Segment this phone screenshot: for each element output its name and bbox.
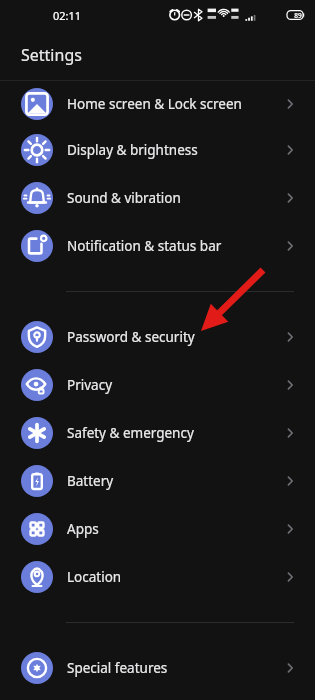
button[interactable]: Location	[0, 553, 315, 601]
staticText: Sound & vibration	[67, 189, 282, 207]
button[interactable]: Special features	[0, 644, 315, 692]
button[interactable]: Password & security	[0, 313, 315, 361]
staticText: 02:11	[53, 8, 82, 23]
staticText: Battery	[67, 472, 282, 490]
staticText: Settings	[21, 44, 82, 66]
staticText: Special features	[67, 659, 282, 677]
button[interactable]: Privacy	[0, 361, 315, 409]
staticText: Privacy	[67, 376, 282, 394]
staticText: Notification & status bar	[67, 237, 282, 255]
button[interactable]: Notification & status bar	[0, 222, 315, 270]
staticText: 89	[294, 11, 302, 20]
button[interactable]: Display & brightness	[0, 126, 315, 174]
staticText: Safety & emergency	[67, 424, 282, 442]
staticText: Apps	[67, 520, 282, 538]
staticText: Display & brightness	[67, 141, 282, 159]
button[interactable]: Home screen & Lock screen	[0, 81, 315, 126]
button[interactable]: Apps	[0, 505, 315, 553]
button[interactable]: Safety & emergency	[0, 409, 315, 457]
staticText: Location	[67, 568, 282, 586]
button[interactable]: Battery	[0, 457, 315, 505]
button[interactable]: Sound & vibration	[0, 174, 315, 222]
staticText: Home screen & Lock screen	[67, 95, 282, 113]
staticText: Password & security	[67, 328, 282, 346]
